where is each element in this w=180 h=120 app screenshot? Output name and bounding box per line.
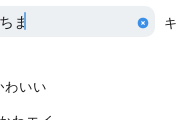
staticText: ちま bbox=[0, 13, 29, 31]
staticText: キ bbox=[164, 15, 178, 31]
button[interactable]: Clear text bbox=[130, 10, 156, 36]
button[interactable]: かわエイ bbox=[0, 112, 180, 120]
button[interactable]: かわいい bbox=[0, 78, 180, 96]
staticText: かわいい bbox=[0, 79, 47, 95]
staticText: かわエイ bbox=[0, 113, 54, 120]
button[interactable]: キ bbox=[164, 11, 178, 35]
